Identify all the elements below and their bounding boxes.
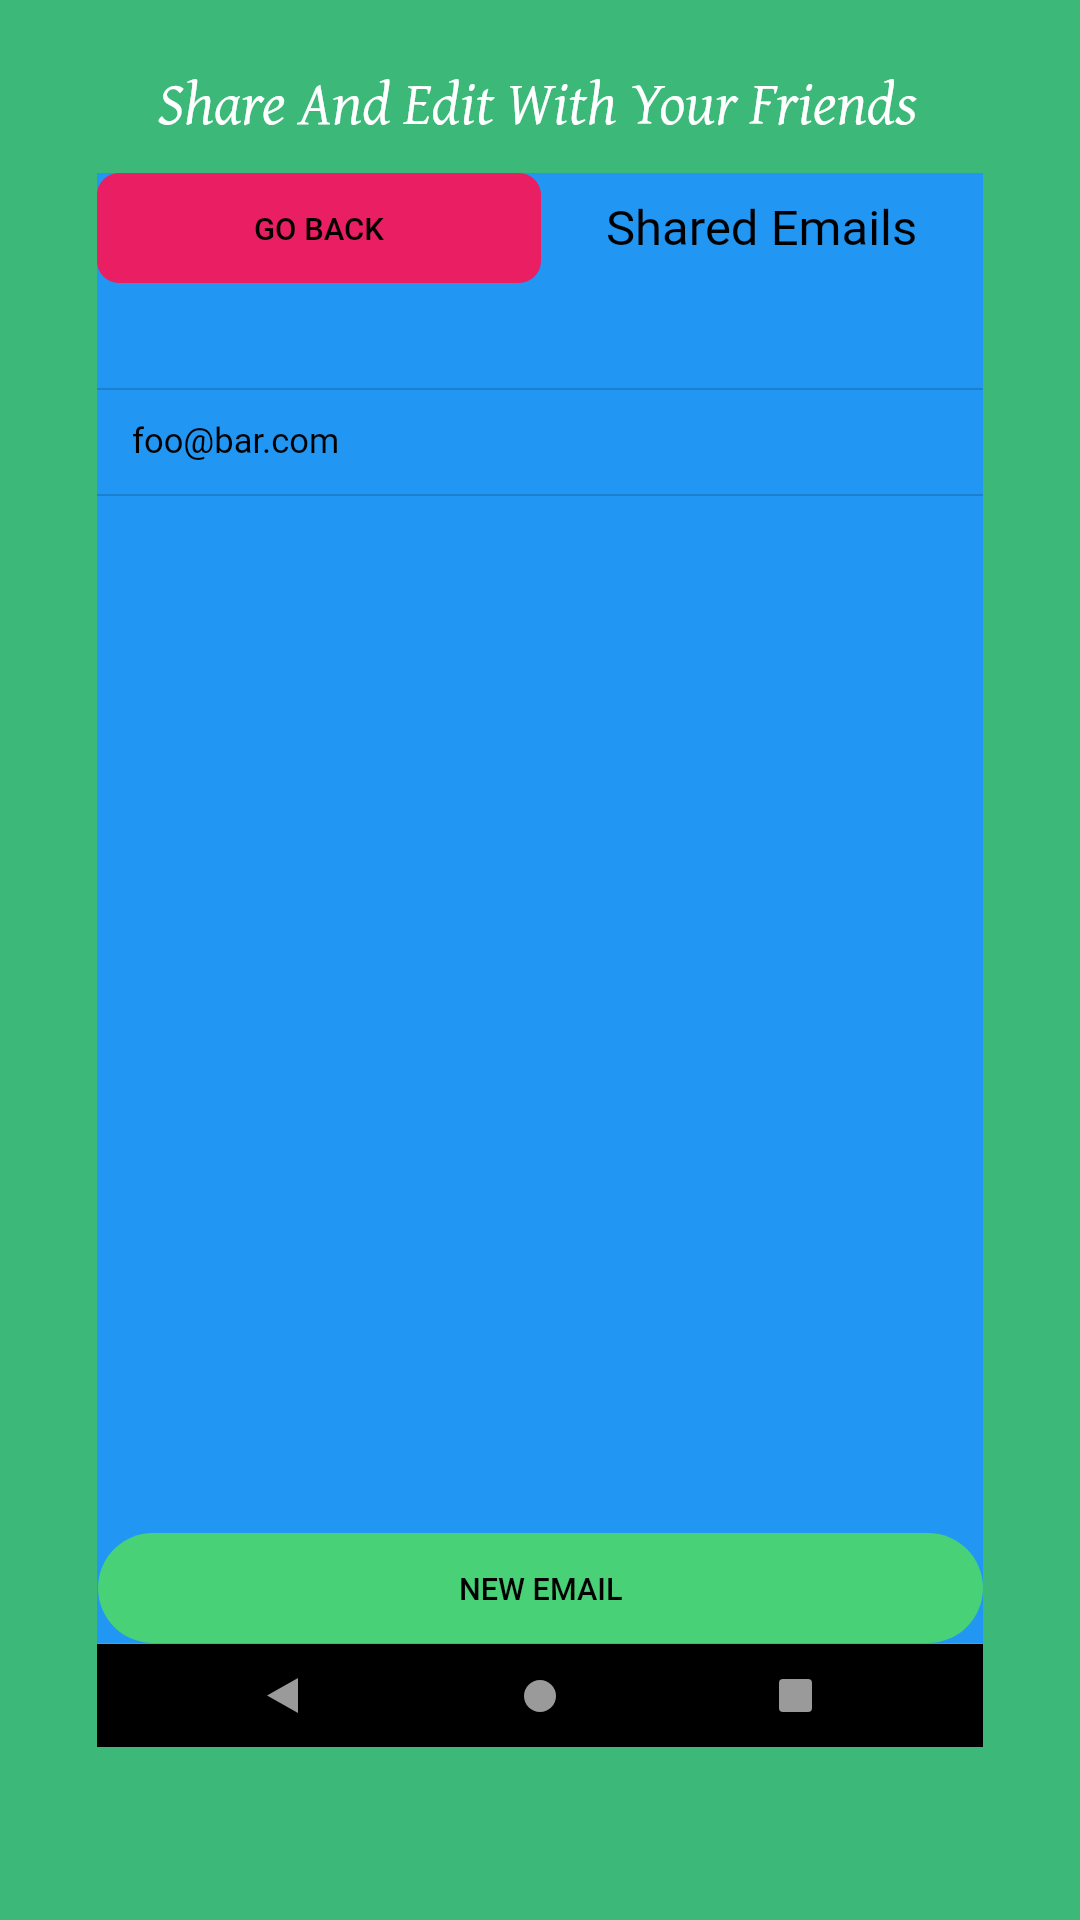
staticText: foo@bar.com	[132, 421, 340, 461]
button[interactable]: NEW EMAIL	[98, 1533, 983, 1643]
staticText: GO BACK	[254, 211, 384, 247]
staticText: NEW EMAIL	[459, 1572, 623, 1608]
button[interactable]: foo@bar.com	[97, 390, 983, 494]
button[interactable]: Recent apps	[724, 1644, 866, 1747]
button[interactable]: GO BACK	[97, 173, 541, 283]
staticText: Share And Edit With Your Friends	[157, 57, 917, 146]
button[interactable]: Back	[211, 1644, 353, 1747]
button[interactable]: Home	[469, 1644, 611, 1747]
staticText: Shared Emails	[606, 200, 918, 257]
